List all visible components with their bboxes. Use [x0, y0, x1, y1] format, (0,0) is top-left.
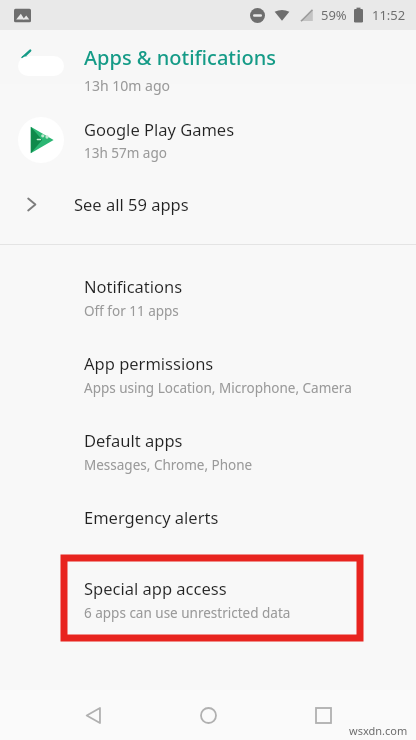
staticText: Apps & notifications	[84, 44, 276, 71]
button[interactable]: Emergency alerts	[0, 496, 416, 550]
staticText: 13h 10m ago	[84, 76, 170, 95]
staticText: Default apps	[84, 429, 183, 451]
staticText: 11:52	[372, 6, 406, 24]
staticText: Off for 11 apps	[84, 302, 179, 320]
staticText: Special app access	[84, 577, 227, 599]
staticText: Notifications	[84, 275, 183, 297]
staticText: Google Play Games	[84, 118, 235, 140]
button[interactable]: Special app access	[0, 550, 416, 642]
staticText: Apps using Location, Microphone, Camera	[84, 379, 352, 397]
staticText: 6 apps can use unrestricted data	[84, 604, 291, 622]
button[interactable]: Default apps	[0, 419, 416, 496]
staticText: See all 59 apps	[74, 193, 189, 215]
staticText: wsxdn.com	[349, 723, 408, 738]
staticText: 13h 57m ago	[84, 144, 167, 162]
staticText: Messages, Chrome, Phone	[84, 456, 253, 474]
button[interactable]: Back	[71, 693, 115, 737]
staticText: 59%	[321, 6, 347, 24]
button[interactable]: Notifications	[0, 265, 416, 342]
staticText: Emergency alerts	[84, 506, 219, 528]
button[interactable]: Recent apps	[301, 693, 345, 737]
button[interactable]: Back	[10, 35, 54, 79]
button[interactable]: Home	[186, 693, 230, 737]
staticText: App permissions	[84, 352, 214, 374]
button[interactable]: Google Play Games	[0, 104, 416, 176]
button[interactable]: App permissions	[0, 342, 416, 419]
button[interactable]: See all 59 apps	[0, 176, 416, 232]
